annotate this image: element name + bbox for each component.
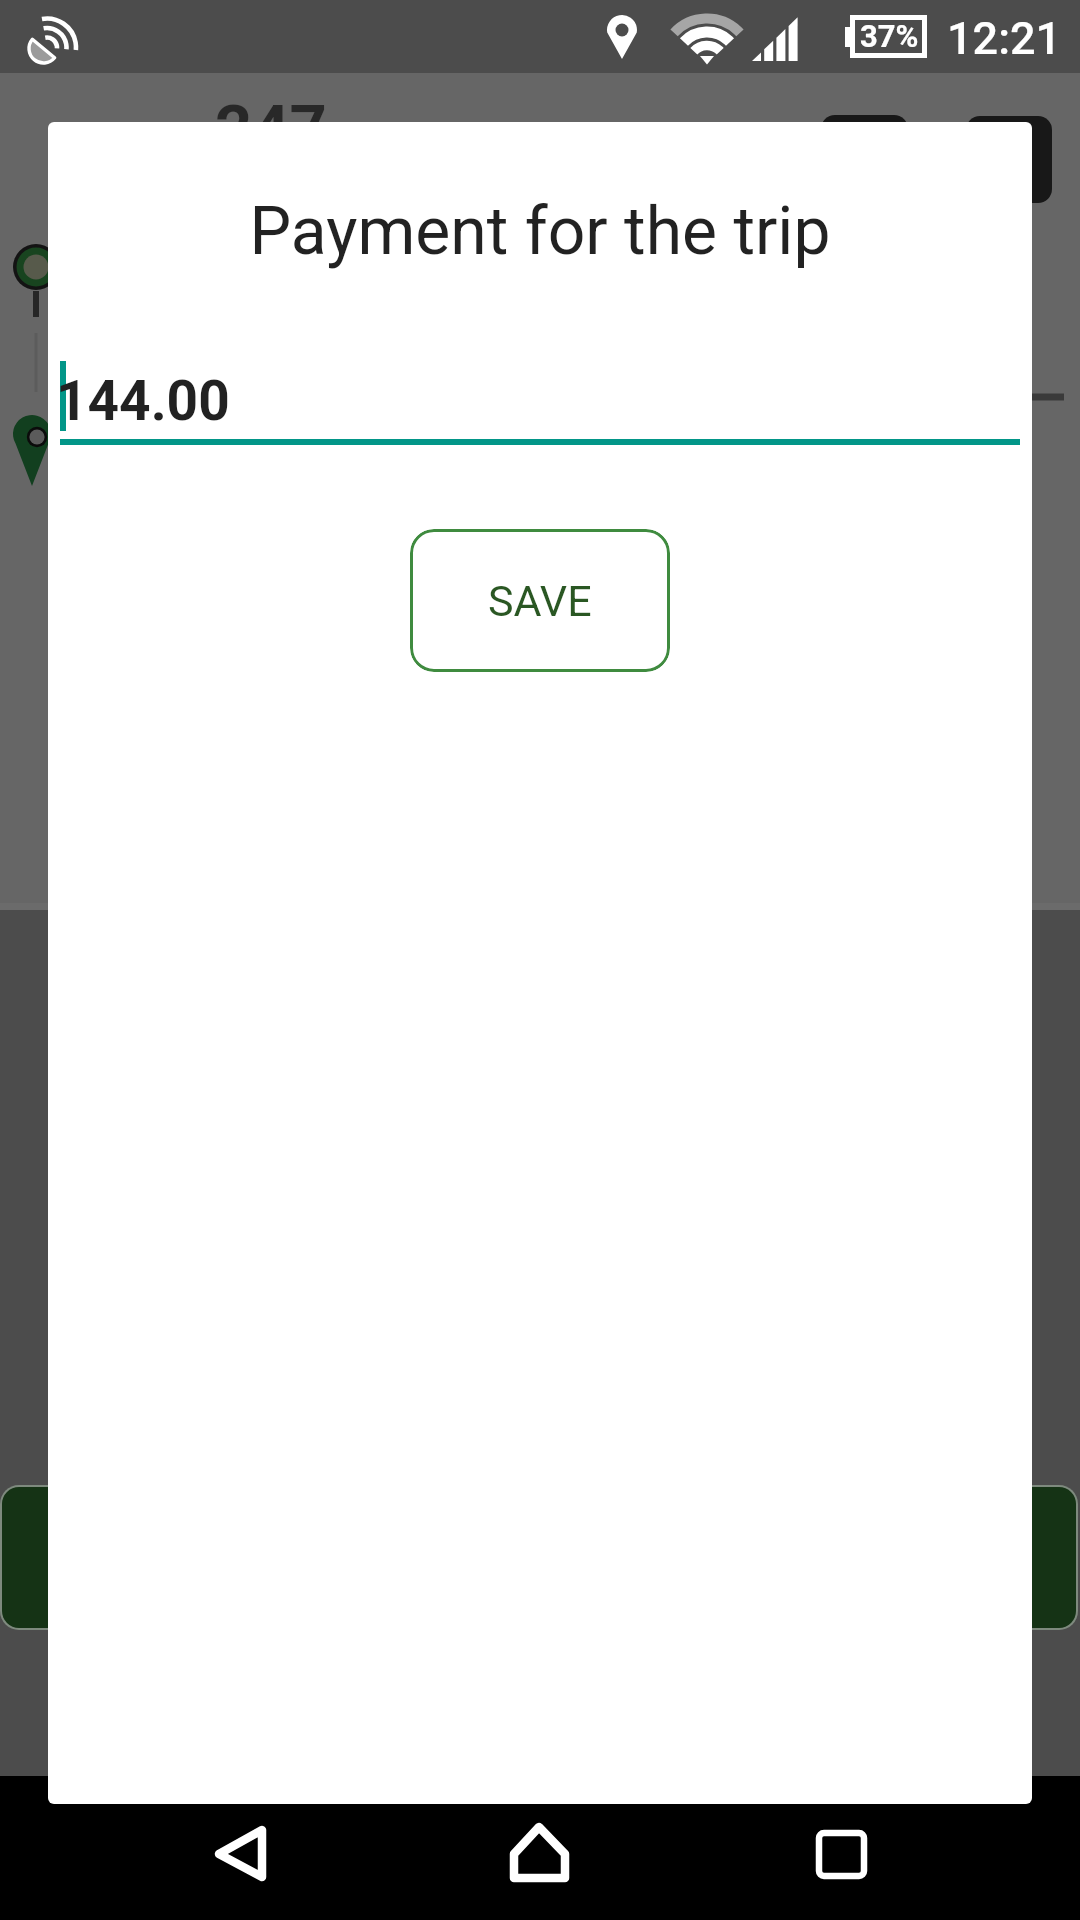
button[interactable]: Back bbox=[180, 1776, 300, 1920]
staticText: SAVE bbox=[488, 576, 592, 626]
button[interactable]: Recent apps bbox=[780, 1776, 900, 1920]
button[interactable]: SAVE bbox=[410, 529, 670, 672]
staticText: 247 bbox=[215, 91, 327, 167]
staticText: 12:21 bbox=[947, 12, 1062, 65]
button[interactable]: Home bbox=[480, 1776, 600, 1920]
button[interactable]: 144.00 bbox=[60, 357, 1020, 445]
staticText: 144.00 bbox=[56, 369, 230, 433]
staticText: 37% bbox=[860, 18, 919, 54]
staticText: Payment for the trip bbox=[48, 193, 1032, 270]
